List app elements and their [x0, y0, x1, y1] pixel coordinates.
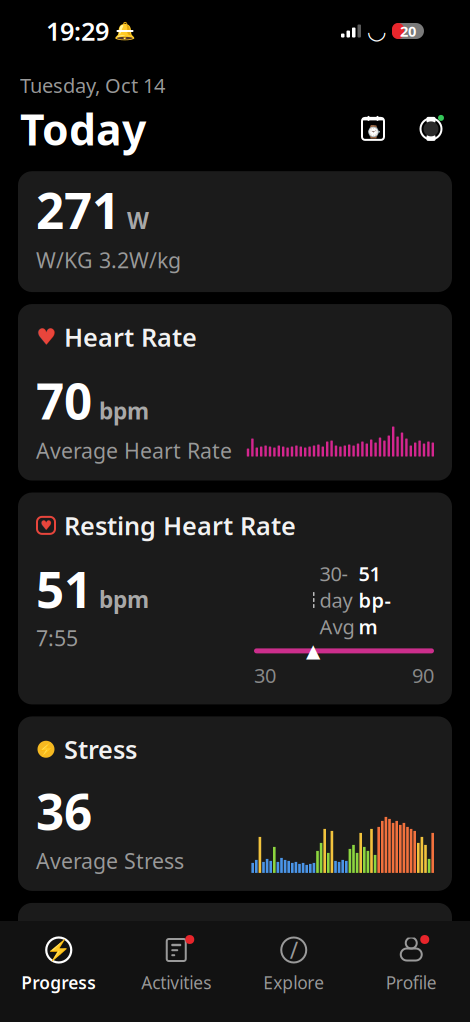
- staticText: Activities: [141, 971, 211, 994]
- button[interactable]: ⚡: [18, 716, 452, 891]
- staticText: ♥: [40, 518, 52, 533]
- staticText: 30: [254, 662, 276, 688]
- button[interactable]: Profile: [352, 927, 470, 1002]
- staticText: ⌚: [365, 125, 380, 139]
- button[interactable]: ♥: [18, 903, 452, 1022]
- staticText: ◡: [368, 18, 385, 44]
- staticText: Explore: [263, 971, 324, 994]
- staticText: 51 bpm: [358, 560, 390, 640]
- button[interactable]: ♥: [18, 304, 452, 481]
- staticText: 70: [36, 368, 92, 433]
- staticText: W: [127, 205, 149, 235]
- staticText: ▲: [306, 640, 320, 661]
- staticText: 19:29: [46, 14, 109, 48]
- staticText: bpm: [99, 584, 149, 614]
- staticText: 30-day Avg: [319, 560, 354, 640]
- staticText: ⚡: [37, 742, 54, 757]
- staticText: Perform a Wellness Check on your watch f…: [36, 966, 403, 1022]
- staticText: W/KG 3.2W/kg: [36, 246, 181, 274]
- staticText: ♥: [45, 931, 58, 948]
- staticText: ⚡: [46, 939, 71, 961]
- staticText: bpm: [99, 396, 149, 426]
- staticText: 51: [36, 556, 92, 622]
- staticText: 7:55: [36, 624, 78, 652]
- button[interactable]: 271: [18, 171, 452, 292]
- staticText: Today: [20, 101, 146, 157]
- button[interactable]: Watch: [412, 108, 450, 150]
- button[interactable]: /: [235, 927, 352, 1002]
- staticText: Average Stress: [36, 847, 184, 875]
- button[interactable]: ♥: [18, 492, 452, 704]
- button[interactable]: Activities: [117, 927, 235, 1002]
- staticText: 271: [36, 177, 120, 243]
- staticText: Profile: [386, 971, 437, 994]
- staticText: Tuesday, Oct 14: [20, 72, 165, 99]
- staticText: ♥: [36, 324, 56, 350]
- staticText: Wellness Check: [66, 919, 256, 952]
- staticText: Progress: [21, 971, 96, 994]
- staticText: Stress: [64, 732, 137, 766]
- button[interactable]: ⚡: [0, 927, 117, 1002]
- staticText: Heart Rate: [64, 320, 197, 354]
- staticText: Resting Heart Rate: [64, 508, 296, 542]
- staticText: 20: [400, 21, 416, 41]
- staticText: 90: [412, 662, 434, 688]
- staticText: 🔔: [114, 21, 136, 41]
- button[interactable]: Calendar: [354, 109, 392, 149]
- staticText: 36: [36, 778, 92, 844]
- staticText: Average Heart Rate: [36, 436, 232, 464]
- staticText: /: [290, 935, 298, 965]
